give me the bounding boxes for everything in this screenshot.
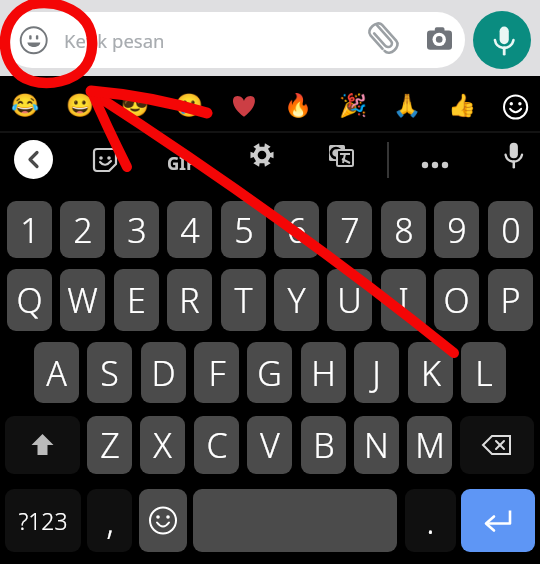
- staticText: I: [398, 277, 409, 323]
- staticText: N: [364, 422, 389, 468]
- button[interactable]: U: [327, 269, 372, 331]
- staticText: 🎉: [339, 92, 368, 118]
- staticText: R: [179, 277, 200, 323]
- staticText: P: [500, 277, 521, 323]
- button[interactable]: [222, 83, 266, 127]
- staticText: Z: [100, 422, 120, 468]
- staticText: .: [426, 498, 435, 544]
- staticText: L: [475, 350, 493, 396]
- button[interactable]: 5: [221, 201, 266, 258]
- button[interactable]: P: [488, 269, 533, 331]
- staticText: M: [415, 422, 445, 468]
- button[interactable]: H: [301, 342, 346, 403]
- button[interactable]: [139, 489, 187, 552]
- staticText: ,: [106, 498, 114, 544]
- button[interactable]: 2: [60, 201, 105, 258]
- button[interactable]: L: [461, 342, 506, 403]
- button[interactable]: 6: [274, 201, 319, 258]
- button[interactable]: GIF: [155, 140, 207, 184]
- button[interactable]: F: [194, 342, 239, 403]
- staticText: 😀: [66, 92, 95, 118]
- button[interactable]: T: [221, 269, 266, 331]
- button[interactable]: ?123: [5, 489, 81, 552]
- button[interactable]: J: [354, 342, 399, 403]
- button[interactable]: .: [405, 489, 456, 552]
- button[interactable]: Q: [7, 269, 52, 331]
- staticText: D: [151, 350, 176, 396]
- staticText: U: [337, 277, 362, 323]
- staticText: 4: [180, 207, 200, 253]
- button[interactable]: More options: [415, 145, 455, 185]
- button[interactable]: Voice input: [494, 134, 534, 174]
- button[interactable]: Emoji keyboard: [494, 85, 538, 129]
- button[interactable]: 3: [114, 201, 159, 258]
- button[interactable]: 9: [434, 201, 479, 258]
- button[interactable]: Translate: [323, 139, 357, 173]
- staticText: 8: [394, 207, 414, 253]
- staticText: GIF: [167, 152, 196, 175]
- button[interactable]: R: [167, 269, 212, 331]
- button[interactable]: K: [408, 342, 453, 403]
- button[interactable]: 7: [327, 201, 372, 258]
- button[interactable]: I: [381, 269, 426, 331]
- button[interactable]: 😎: [113, 83, 157, 127]
- button[interactable]: 🔥: [276, 83, 320, 127]
- staticText: S: [100, 350, 119, 396]
- button[interactable]: [460, 416, 534, 474]
- button[interactable]: ,: [87, 489, 132, 552]
- button[interactable]: [193, 489, 397, 552]
- staticText: C: [206, 422, 228, 468]
- button[interactable]: E: [114, 269, 159, 331]
- staticText: 9: [447, 207, 467, 253]
- button[interactable]: 0: [488, 201, 533, 258]
- staticText: A: [46, 350, 67, 396]
- staticText: X: [153, 422, 172, 468]
- button[interactable]: Record voice message: [473, 11, 531, 69]
- staticText: B: [313, 422, 335, 468]
- button[interactable]: X: [140, 416, 185, 474]
- button[interactable]: 🙏: [385, 83, 429, 127]
- button[interactable]: V: [247, 416, 292, 474]
- button[interactable]: S: [87, 342, 132, 403]
- button[interactable]: Settings: [247, 140, 277, 170]
- button[interactable]: [5, 416, 80, 474]
- staticText: 😎: [121, 92, 150, 118]
- staticText: E: [127, 277, 146, 323]
- button[interactable]: N: [354, 416, 399, 474]
- button[interactable]: C: [194, 416, 239, 474]
- button[interactable]: Stickers: [90, 145, 120, 175]
- button[interactable]: Z: [87, 416, 132, 474]
- staticText: 🥲: [175, 92, 204, 118]
- button[interactable]: 8: [381, 201, 426, 258]
- button[interactable]: 4: [167, 201, 212, 258]
- button[interactable]: B: [301, 416, 346, 474]
- staticText: Y: [287, 277, 306, 323]
- staticText: K: [421, 350, 441, 396]
- staticText: 5: [234, 207, 254, 253]
- button[interactable]: 🥲: [167, 83, 211, 127]
- button[interactable]: [461, 489, 535, 552]
- staticText: H: [311, 350, 336, 396]
- staticText: 6: [287, 207, 307, 253]
- button[interactable]: 😀: [58, 83, 102, 127]
- button[interactable]: 😂: [3, 83, 47, 127]
- button[interactable]: 🎉: [331, 83, 375, 127]
- button[interactable]: W: [60, 269, 105, 331]
- staticText: 2: [73, 207, 93, 253]
- button[interactable]: Ketik pesan: [4, 12, 465, 68]
- staticText: O: [443, 277, 470, 323]
- button[interactable]: Back: [14, 140, 53, 179]
- button[interactable]: Y: [274, 269, 319, 331]
- staticText: 0: [501, 207, 521, 253]
- staticText: 🔥: [284, 92, 313, 118]
- button[interactable]: 👍: [440, 83, 484, 127]
- button[interactable]: D: [141, 342, 186, 403]
- staticText: 7: [340, 207, 360, 253]
- button[interactable]: 1: [7, 201, 52, 258]
- staticText: Ketik pesan: [64, 28, 165, 53]
- button[interactable]: M: [407, 416, 452, 474]
- staticText: G: [257, 350, 282, 396]
- button[interactable]: G: [247, 342, 292, 403]
- button[interactable]: O: [434, 269, 479, 331]
- button[interactable]: A: [34, 342, 79, 403]
